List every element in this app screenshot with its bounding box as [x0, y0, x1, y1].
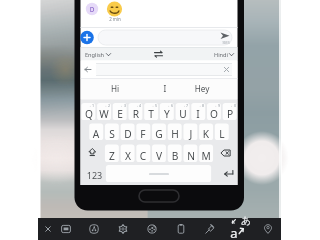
staticText: K — [198, 127, 214, 141]
staticText: 4 — [132, 103, 148, 108]
staticText: 8 — [195, 103, 211, 108]
staticText: M — [198, 149, 214, 163]
staticText: S — [104, 127, 120, 141]
staticText: 6 — [164, 103, 180, 108]
button[interactable]: Close — [37, 218, 59, 240]
staticText: G — [151, 127, 167, 141]
button[interactable]: Copy — [170, 218, 192, 240]
staticText: Hindi — [214, 51, 234, 59]
staticText: E — [112, 107, 128, 121]
button[interactable]: Pin — [199, 218, 221, 240]
staticText: T — [143, 107, 159, 121]
staticText: B — [167, 149, 183, 163]
staticText: H — [167, 127, 183, 141]
staticText: L — [214, 127, 230, 141]
staticText: I — [152, 83, 178, 94]
staticText: W — [96, 107, 112, 121]
staticText: O — [206, 107, 222, 121]
staticText: J — [183, 127, 199, 141]
staticText: 7 — [179, 103, 195, 108]
staticText: Hi — [102, 83, 128, 94]
staticText: U — [175, 107, 191, 121]
staticText: A — [88, 127, 104, 141]
button[interactable]: Translate — [227, 218, 249, 240]
staticText: P — [222, 107, 238, 121]
staticText: Z — [104, 149, 120, 163]
staticText: 2 min — [103, 16, 127, 22]
staticText: R — [128, 107, 144, 121]
staticText: F — [135, 127, 151, 141]
button[interactable]: Lens — [141, 218, 163, 240]
staticText: N — [183, 149, 199, 163]
staticText: 0 — [227, 103, 243, 108]
staticText: SMS — [218, 40, 234, 45]
staticText: あ — [241, 215, 251, 227]
staticText: I — [190, 107, 206, 121]
staticText: 123 — [82, 169, 107, 181]
staticText: a — [229, 224, 239, 240]
staticText: X — [120, 149, 136, 163]
staticText: English — [85, 51, 109, 59]
staticText: C — [135, 149, 151, 163]
button[interactable]: Location — [257, 218, 279, 240]
staticText: Q — [81, 107, 97, 121]
staticText: V — [151, 149, 167, 163]
button[interactable]: GIF — [55, 218, 77, 240]
button[interactable]: Share — [83, 218, 105, 240]
staticText: Hey — [189, 83, 215, 94]
staticText: 3 — [117, 103, 133, 108]
staticText: D — [87, 5, 97, 14]
staticText: 9 — [211, 103, 227, 108]
staticText: Y — [159, 107, 175, 121]
staticText: 2 — [101, 103, 117, 108]
staticText: 5 — [148, 103, 164, 108]
button[interactable]: Settings — [112, 218, 134, 240]
staticText: D — [120, 127, 136, 141]
staticText: 1 — [85, 103, 101, 108]
